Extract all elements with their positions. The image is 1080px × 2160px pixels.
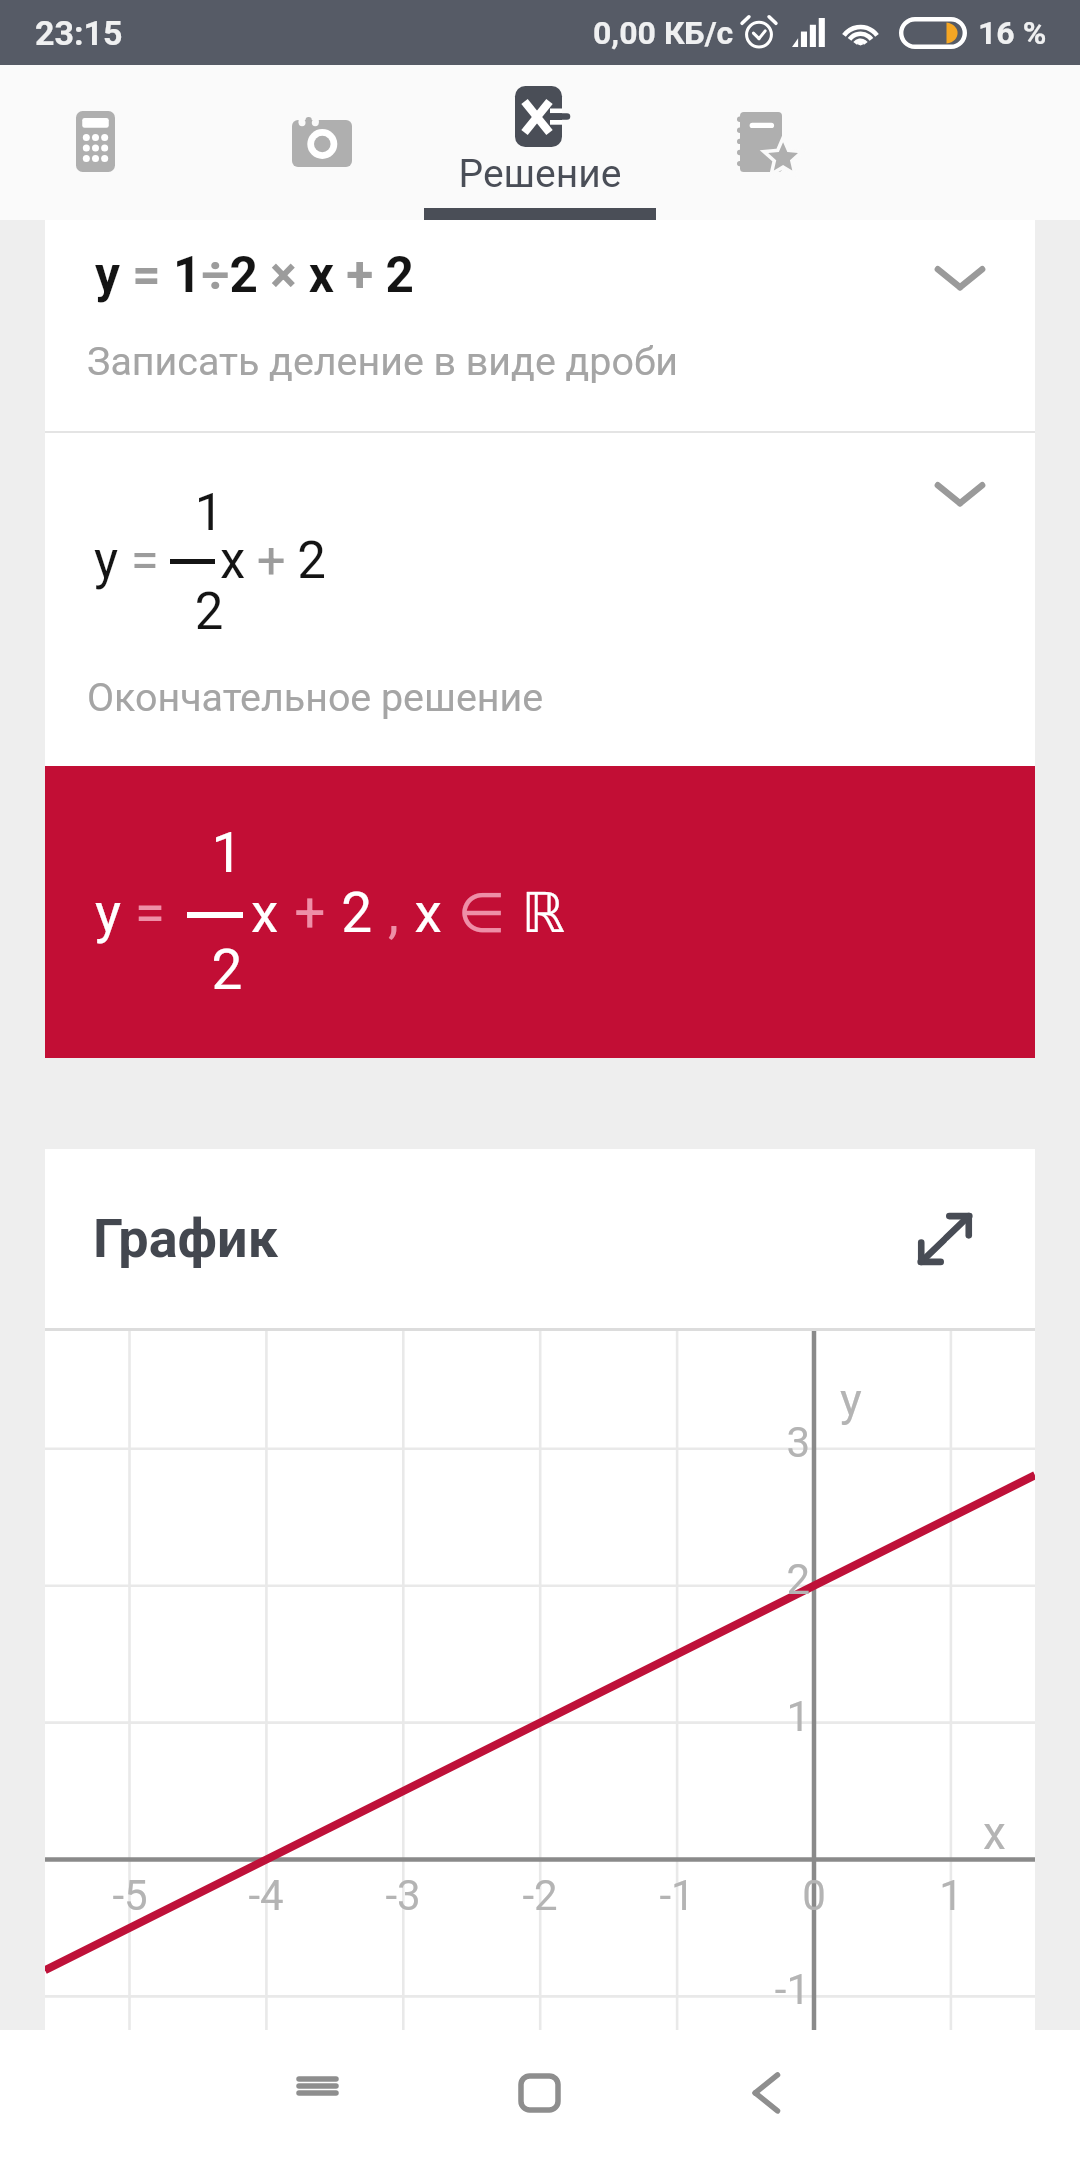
staticText: 1 bbox=[710, 1692, 810, 1741]
staticText: 1 bbox=[911, 1871, 991, 1920]
staticText: Записать деление в виде дроби bbox=[87, 338, 679, 384]
staticText: x + 2 , x ∈ ℝ bbox=[251, 881, 567, 945]
staticText: Решение bbox=[424, 151, 656, 197]
button[interactable]: Последние приложения bbox=[282, 2062, 354, 2134]
button[interactable] bbox=[45, 766, 1035, 1058]
staticText: 2 bbox=[197, 938, 257, 1002]
staticText: 2 bbox=[710, 1555, 810, 1604]
button[interactable]: y = 1÷2 × x + 2 bbox=[45, 220, 1035, 431]
staticText: -1 bbox=[637, 1871, 717, 1920]
staticText: -1 bbox=[710, 1965, 810, 2014]
staticText: y = 1÷2 × x + 2 bbox=[95, 246, 414, 304]
staticText: 1 bbox=[181, 483, 237, 543]
staticText: 3 bbox=[710, 1418, 810, 1467]
staticText: 0 bbox=[774, 1871, 854, 1920]
button[interactable]: Назад bbox=[730, 2062, 802, 2134]
button[interactable]: y = bbox=[45, 433, 1035, 766]
staticText: y = bbox=[95, 881, 165, 945]
staticText: 1 bbox=[197, 821, 257, 885]
button[interactable]: Решение bbox=[424, 65, 656, 220]
button[interactable]: Камера bbox=[193, 65, 424, 220]
button[interactable]: Главный экран bbox=[504, 2062, 576, 2134]
staticText: 16 % bbox=[978, 14, 1047, 52]
staticText: y bbox=[840, 1373, 862, 1427]
staticText: Окончательное решение bbox=[87, 674, 544, 720]
button[interactable]: Избранное bbox=[656, 65, 887, 220]
staticText: 2 bbox=[181, 582, 237, 642]
button[interactable]: Калькулятор bbox=[0, 65, 193, 220]
staticText: 23:15 bbox=[35, 13, 123, 53]
button[interactable]: Развернуть график bbox=[891, 1185, 999, 1293]
staticText: -3 bbox=[363, 1871, 443, 1920]
staticText: x bbox=[983, 1806, 1006, 1860]
staticText: 0,00 КБ/с bbox=[593, 14, 734, 52]
staticText: y = bbox=[94, 531, 159, 591]
staticText: График bbox=[93, 1207, 279, 1270]
staticText: x + 2 bbox=[220, 531, 326, 591]
staticText: -5 bbox=[90, 1871, 170, 1920]
staticText: -4 bbox=[226, 1871, 306, 1920]
staticText: -2 bbox=[500, 1871, 580, 1920]
